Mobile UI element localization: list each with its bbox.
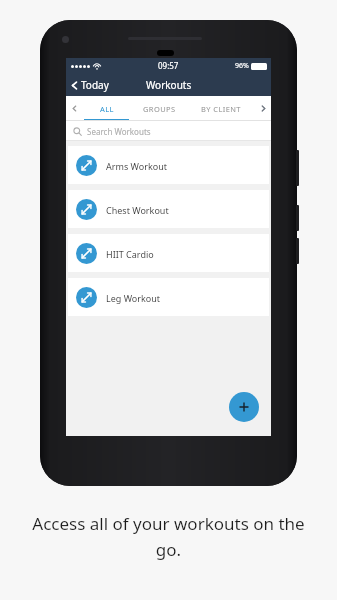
button[interactable]: Leg Workout	[68, 278, 269, 316]
button[interactable]: Next tabs	[255, 96, 271, 121]
staticText: BY CLIENT	[201, 104, 241, 114]
button[interactable]: ALL	[82, 96, 131, 121]
button[interactable]: HIIT Cardio	[68, 234, 269, 272]
staticText: 09:57	[158, 60, 179, 71]
staticText: GROUPS	[143, 104, 176, 114]
staticText: 96%	[235, 61, 249, 71]
button[interactable]: GROUPS	[131, 96, 187, 121]
staticText: HIIT Cardio	[106, 248, 154, 260]
staticText: Arms Workout	[106, 160, 167, 172]
button[interactable]: Chest Workout	[68, 190, 269, 228]
button[interactable]: Previous tabs	[66, 96, 82, 121]
staticText: Workouts	[146, 78, 192, 92]
button[interactable]: Add workout	[229, 392, 259, 422]
button[interactable]: Arms Workout	[68, 146, 269, 184]
button[interactable]: Today	[66, 75, 115, 95]
button[interactable]: Search Workouts	[66, 121, 271, 141]
staticText: Leg Workout	[106, 292, 161, 304]
staticText: Search Workouts	[87, 126, 151, 137]
button[interactable]: BY CLIENT	[187, 96, 255, 121]
staticText: ALL	[100, 104, 114, 114]
staticText: Access all of your workouts on the go.	[18, 512, 319, 561]
staticText: Chest Workout	[106, 204, 169, 216]
staticText: Today	[81, 78, 109, 92]
